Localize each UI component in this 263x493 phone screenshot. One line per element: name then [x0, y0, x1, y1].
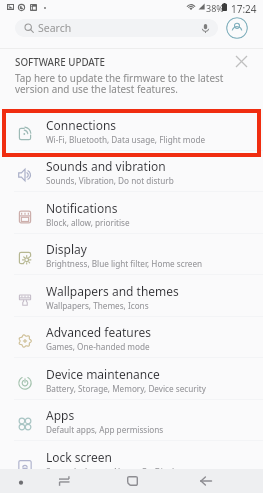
staticText: Wallpapers and themes — [46, 283, 179, 299]
button[interactable]: Lock screen — [0, 442, 263, 483]
button[interactable]: Search — [15, 19, 218, 37]
staticText: Games, One-handed mode — [46, 341, 150, 352]
staticText: 17:24 — [231, 2, 257, 16]
staticText: Default apps, App permissions — [46, 424, 164, 435]
button[interactable]: Dismiss — [236, 56, 247, 67]
button[interactable]: Recents — [42, 469, 86, 493]
button[interactable]: Device maintenance — [0, 359, 263, 400]
staticText: Battery, Storage, Memory, Device securit… — [46, 383, 206, 394]
staticText: Advanced features — [46, 324, 151, 340]
button[interactable]: SOFTWARE UPDATE — [0, 48, 263, 110]
button[interactable]: Assistant — [2, 469, 40, 493]
button[interactable]: Notifications — [0, 193, 263, 234]
staticText: Block, allow, prioritise — [46, 217, 130, 228]
button[interactable]: Voice search — [200, 23, 211, 34]
staticText: Tap here to update the firmware to the l… — [15, 71, 227, 96]
staticText: SOFTWARE UPDATE — [15, 56, 106, 69]
staticText: Screen lock type, Always On Display — [46, 466, 183, 477]
button[interactable]: Apps — [0, 400, 263, 441]
staticText: Notifications — [46, 200, 118, 216]
button[interactable]: Advanced features — [0, 317, 263, 358]
staticText: 38% — [206, 2, 224, 14]
staticText: Display — [46, 241, 87, 257]
staticText: Sounds, Vibration, Do not disturb — [46, 175, 174, 186]
staticText: Connections — [46, 117, 117, 133]
button[interactable]: Wallpapers and themes — [0, 276, 263, 317]
button[interactable]: Back — [186, 469, 226, 493]
button[interactable]: Display — [0, 234, 263, 275]
staticText: Wallpapers, Themes, Icons — [46, 300, 149, 311]
button[interactable]: Connections — [0, 110, 263, 151]
button[interactable]: Home — [112, 469, 152, 493]
staticText: Wi-Fi, Bluetooth, Data usage, Flight mod… — [46, 134, 206, 145]
staticText: Device maintenance — [46, 366, 160, 382]
staticText: Brightness, Blue light filter, Home scre… — [46, 258, 203, 269]
button[interactable]: Sounds and vibration — [0, 151, 263, 192]
button[interactable]: Account — [226, 17, 248, 39]
staticText: Sounds and vibration — [46, 158, 166, 174]
staticText: Lock screen — [46, 449, 113, 465]
staticText: Apps — [46, 407, 75, 423]
staticText: Search — [38, 21, 72, 35]
